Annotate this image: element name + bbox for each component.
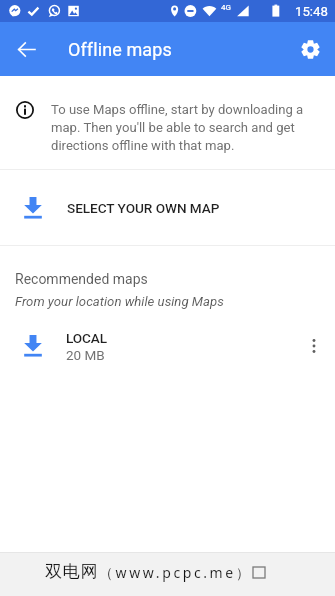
button[interactable]: Settings: [290, 29, 330, 69]
button[interactable]: More options: [295, 327, 333, 365]
staticText: 20 MB: [66, 347, 105, 363]
staticText: LOCAL: [66, 330, 108, 346]
staticText: From your location while using Maps: [15, 294, 224, 309]
button[interactable]: SELECT YOUR OWN MAP: [0, 170, 335, 245]
staticText: To use Maps offline, start by downloadin…: [51, 102, 307, 153]
staticText: Recommended maps: [15, 271, 148, 287]
staticText: 双电网: [45, 561, 99, 582]
staticText: SELECT YOUR OWN MAP: [67, 200, 220, 216]
staticText: 4G: [221, 3, 231, 12]
button[interactable]: LOCAL: [0, 317, 335, 375]
button[interactable]: Navigate up: [6, 29, 46, 69]
staticText: （www.pcpc.me）: [99, 563, 253, 582]
staticText: Offline maps: [68, 39, 172, 60]
staticText: 15:48: [295, 4, 328, 19]
